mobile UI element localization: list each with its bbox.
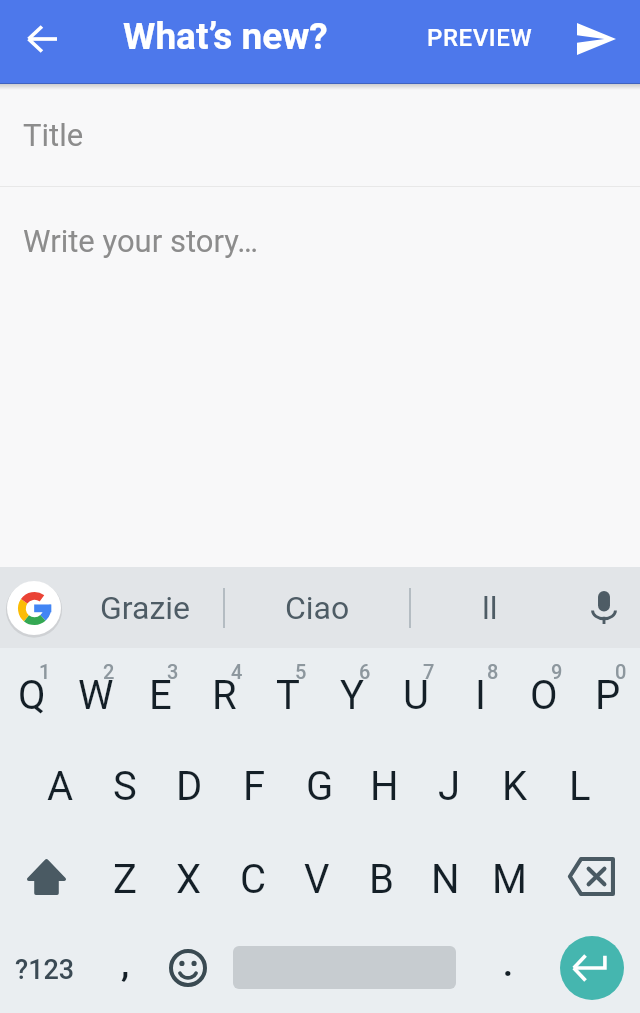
button[interactable]: J <box>417 740 482 831</box>
staticText: U <box>403 672 429 719</box>
staticText: 8 <box>487 660 499 683</box>
staticText: E <box>149 672 172 719</box>
button[interactable]: D <box>157 740 222 831</box>
button[interactable]: Google <box>0 567 68 648</box>
staticText: V <box>304 856 330 903</box>
button[interactable]: Voice input <box>568 567 640 648</box>
staticText: 5 <box>295 660 307 683</box>
staticText: 2 <box>103 660 115 683</box>
button[interactable]: K <box>482 740 547 831</box>
staticText: Y <box>340 672 365 719</box>
staticText: ll <box>482 589 498 627</box>
staticText: 0 <box>615 660 627 683</box>
staticText: Q <box>18 672 46 719</box>
staticText: . <box>503 944 513 984</box>
button[interactable]: T <box>256 648 320 740</box>
button[interactable] <box>216 922 472 1013</box>
button[interactable]: Ciao <box>225 567 409 648</box>
staticText: H <box>370 763 399 810</box>
button[interactable]: L <box>547 740 612 831</box>
staticText: 4 <box>231 660 243 683</box>
staticText: W <box>78 672 114 719</box>
staticText: D <box>176 763 203 810</box>
staticText: 6 <box>359 660 371 683</box>
staticText: I <box>475 672 486 719</box>
staticText: 9 <box>551 660 563 683</box>
button[interactable]: Z <box>93 831 157 922</box>
button[interactable]: U <box>384 648 448 740</box>
button[interactable]: W <box>64 648 128 740</box>
button[interactable]: O <box>512 648 576 740</box>
staticText: N <box>431 856 460 903</box>
button[interactable]: B <box>349 831 413 922</box>
staticText: J <box>438 763 461 810</box>
staticText: F <box>243 763 266 810</box>
staticText: 1 <box>39 660 51 683</box>
staticText: Write your story… <box>23 223 258 259</box>
button[interactable]: Enter <box>544 922 640 1013</box>
staticText: Grazie <box>100 589 191 627</box>
staticText: A <box>47 763 74 810</box>
staticText: Z <box>113 856 137 903</box>
button[interactable]: , <box>90 922 160 1013</box>
button[interactable]: Send <box>552 0 640 81</box>
button[interactable]: N <box>413 831 477 922</box>
button[interactable]: Backspace <box>541 831 640 922</box>
staticText: S <box>113 763 137 810</box>
staticText: X <box>176 856 202 903</box>
button[interactable]: Write your story… <box>0 187 640 295</box>
button[interactable]: Title <box>0 84 640 186</box>
staticText: Ciao <box>285 589 350 627</box>
staticText: L <box>569 763 591 810</box>
button[interactable]: Grazie <box>68 567 223 648</box>
staticText: R <box>212 672 237 719</box>
button[interactable]: ll <box>411 567 568 648</box>
button[interactable]: . <box>472 922 544 1013</box>
button[interactable]: M <box>477 831 541 922</box>
staticText: T <box>276 672 300 719</box>
button[interactable]: ?123 <box>0 922 90 1013</box>
button[interactable]: X <box>157 831 221 922</box>
button[interactable]: Emoji <box>160 922 216 1013</box>
staticText: PREVIEW <box>427 24 533 52</box>
button[interactable]: V <box>285 831 349 922</box>
staticText: C <box>240 856 267 903</box>
staticText: 3 <box>167 660 179 683</box>
button[interactable]: R <box>192 648 256 740</box>
button[interactable]: Y <box>320 648 384 740</box>
staticText: P <box>595 672 621 719</box>
button[interactable]: P <box>576 648 640 740</box>
button[interactable]: Back <box>0 0 84 81</box>
button[interactable]: I <box>448 648 512 740</box>
staticText: O <box>530 672 558 719</box>
button[interactable]: C <box>221 831 285 922</box>
button[interactable]: PREVIEW <box>411 0 552 81</box>
staticText: 7 <box>423 660 435 683</box>
button[interactable]: Q <box>0 648 64 740</box>
staticText: G <box>306 763 334 810</box>
staticText: K <box>502 763 528 810</box>
staticText: ?123 <box>15 954 75 986</box>
staticText: B <box>369 856 394 903</box>
button[interactable]: G <box>287 740 352 831</box>
button[interactable]: E <box>128 648 192 740</box>
button[interactable]: Shift <box>0 831 93 922</box>
staticText: , <box>121 944 130 984</box>
staticText: What’s new? <box>123 15 328 58</box>
staticText: M <box>492 856 527 903</box>
button[interactable]: S <box>92 740 157 831</box>
button[interactable]: F <box>222 740 287 831</box>
button[interactable]: H <box>352 740 417 831</box>
staticText: Title <box>23 117 84 153</box>
button[interactable]: A <box>28 740 92 831</box>
